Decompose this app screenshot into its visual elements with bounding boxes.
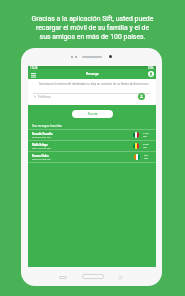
button[interactable]: Account <box>148 71 154 77</box>
button[interactable]: Kouadio Kouadio <box>28 129 156 140</box>
button[interactable]: Back <box>117 275 123 280</box>
staticText: Kouadio Kouadio <box>32 132 53 135</box>
staticText: +225 610 345 345 <box>32 158 51 161</box>
button[interactable]: Menu <box>30 71 37 78</box>
button[interactable]: Pick contact <box>138 93 145 100</box>
button[interactable]: Malik Ndiaye <box>28 140 156 151</box>
staticText: +225 476 084 590 <box>32 136 51 139</box>
button[interactable]: Enviar <box>72 110 113 118</box>
staticText: Kouassi Kabu <box>32 154 49 157</box>
staticText: +221 776 154 545 <box>32 147 51 150</box>
staticText: Recarga <box>86 72 99 76</box>
staticText: 2 500 <box>143 132 149 135</box>
staticText: Gracias a la aplicación Sift, usted pued… <box>31 15 154 40</box>
button[interactable]: Home <box>82 274 104 279</box>
staticText: 3 000 <box>143 143 149 146</box>
staticText: Enviar <box>88 112 98 116</box>
button[interactable]: Recent apps <box>60 275 66 280</box>
staticText: Introduzca el número del destinatario o … <box>39 82 149 85</box>
button[interactable]: Kouassi Kabu <box>28 151 156 162</box>
staticText: 85% <box>148 66 154 69</box>
staticText: 15:34 <box>30 66 38 69</box>
staticText: XOF <box>143 135 148 138</box>
staticText: 800 <box>144 154 148 157</box>
staticText: Malik Ndiaye <box>32 143 48 146</box>
staticText: XOF <box>144 157 149 160</box>
staticText: Sus recargas favoritas <box>32 124 62 128</box>
staticText: XOF <box>143 146 148 149</box>
staticText: + Teléfono <box>34 95 51 99</box>
